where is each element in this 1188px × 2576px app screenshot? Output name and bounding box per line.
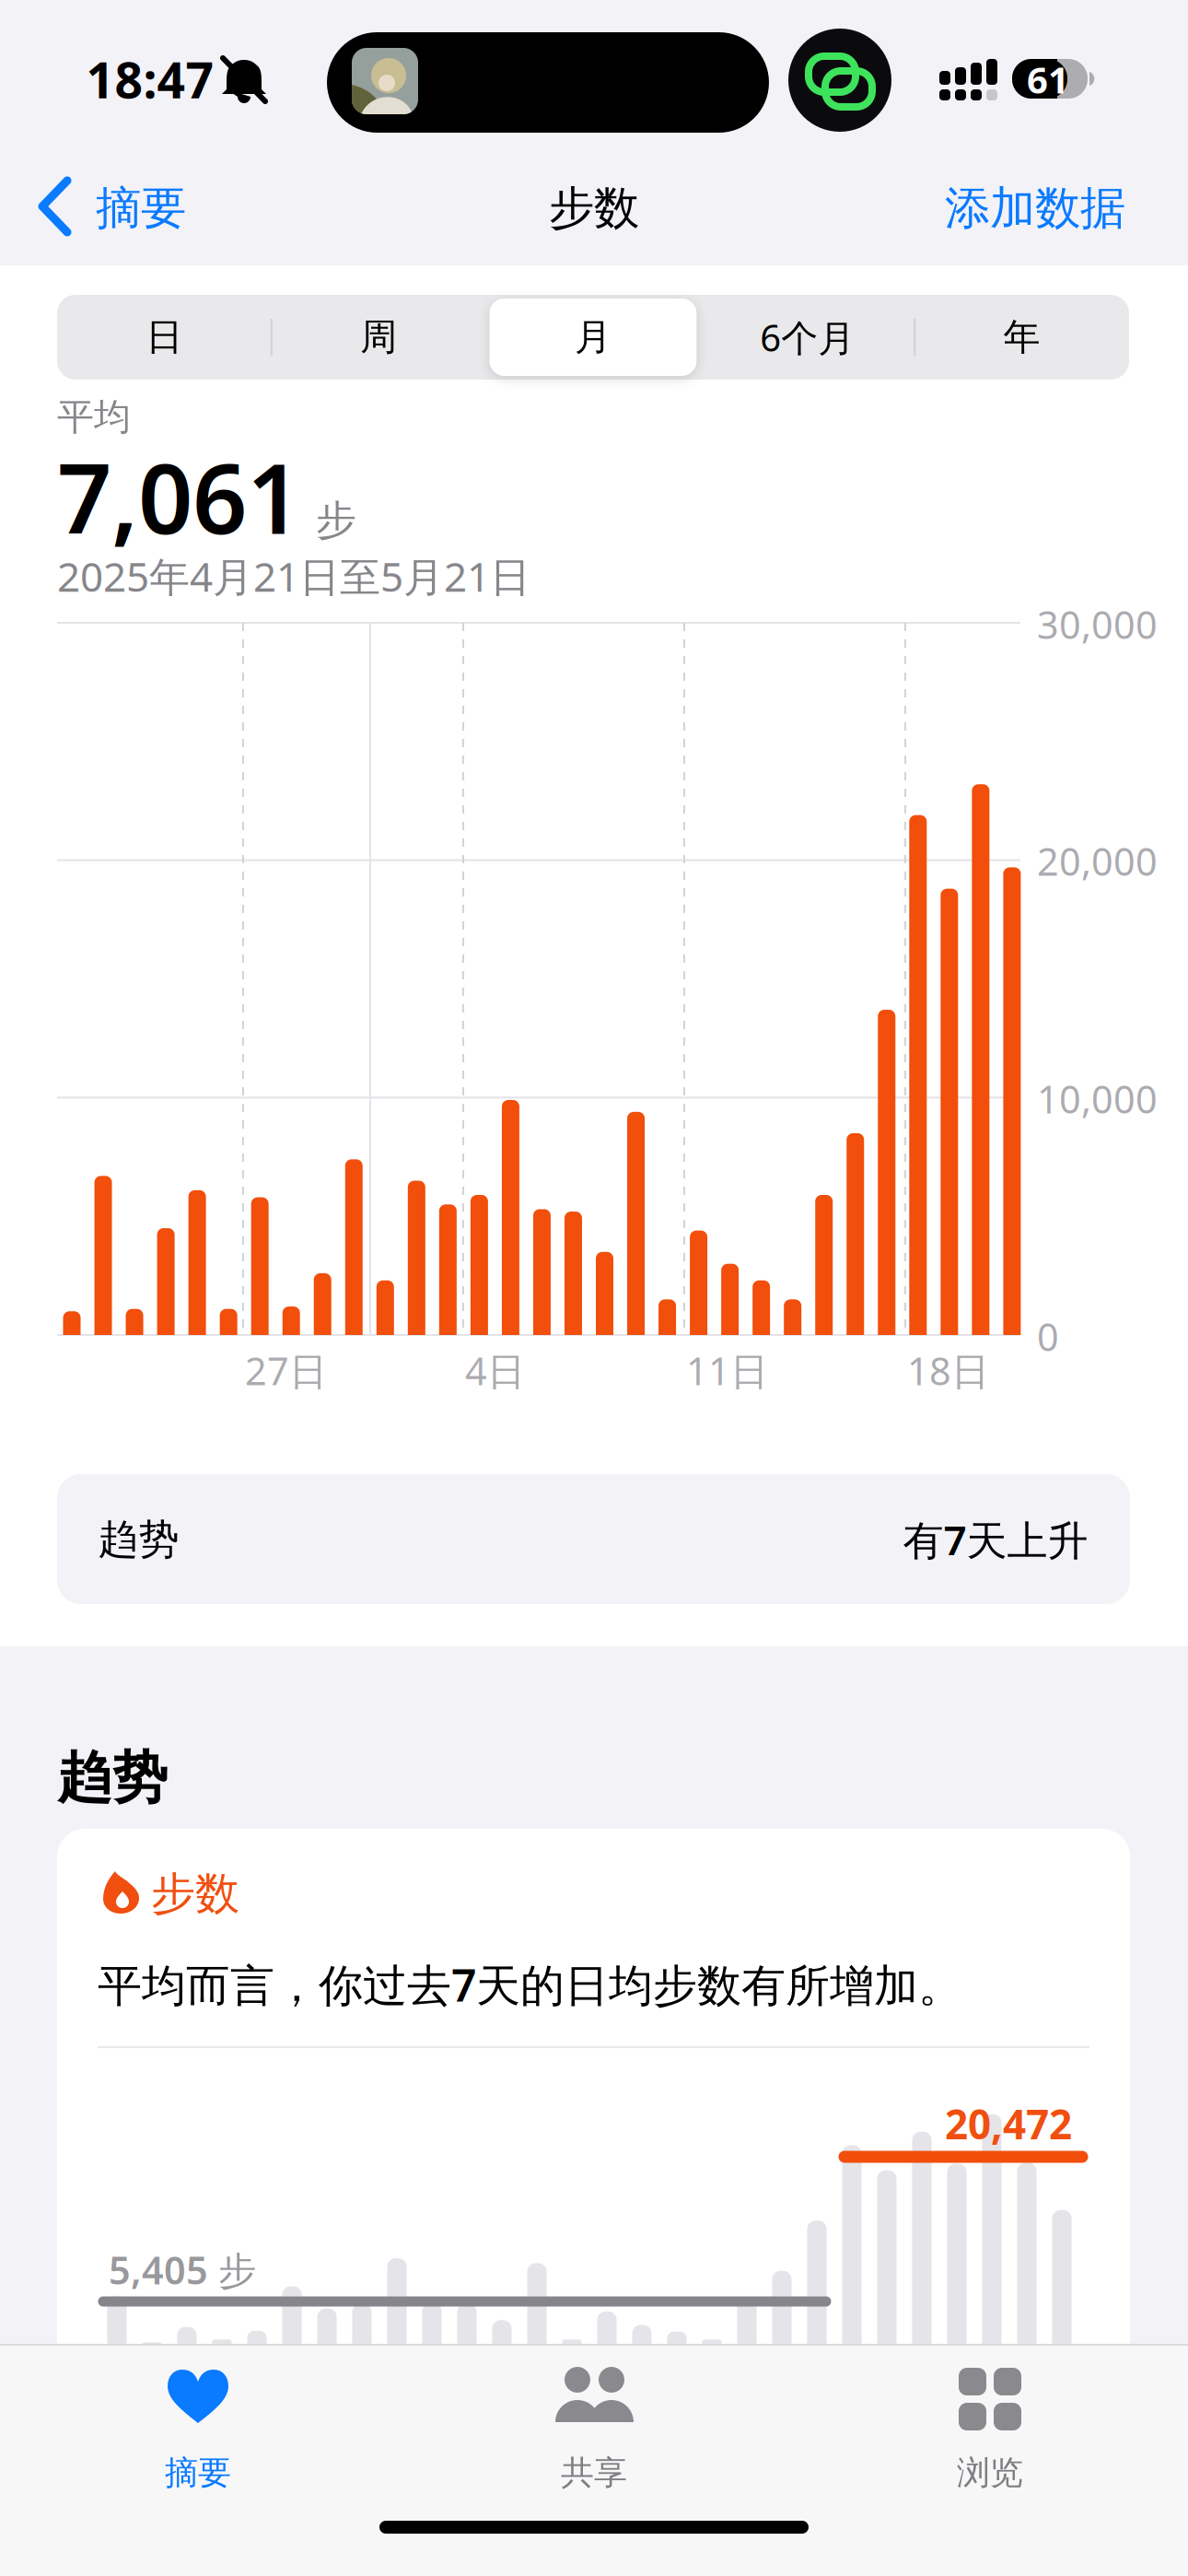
staticText: 61 [1027, 55, 1069, 104]
staticText: 日 [146, 315, 183, 360]
staticText: 步 [316, 495, 356, 545]
staticText: 4日 [465, 1345, 525, 1396]
staticText: 平均而言，你过去7天的日均步数有所增加。 [98, 1955, 962, 2014]
staticText: 18:47 [86, 47, 214, 112]
staticText: 步数 [151, 1867, 239, 1921]
staticText: 浏览 [957, 2452, 1023, 2493]
staticText: 添加数据 [945, 180, 1125, 236]
staticText: 平均 [57, 394, 131, 440]
staticText: 有7天上升 [903, 1513, 1088, 1566]
staticText: 5,405 步 [109, 2244, 256, 2295]
staticText: 摘要 [96, 180, 186, 236]
staticText: 月 [575, 315, 611, 360]
staticText: 10,000 [1037, 1073, 1158, 1124]
staticText: 20,472 [945, 2097, 1072, 2151]
staticText: 2025年4月21日至5月21日 [57, 549, 530, 603]
staticText: 趋势 [57, 1744, 168, 1812]
staticText: 步数 [549, 180, 639, 236]
staticText: 周 [360, 315, 397, 360]
staticText: 30,000 [1037, 599, 1158, 649]
staticText: 7,061 [57, 433, 301, 560]
staticText: 摘要 [165, 2452, 231, 2493]
staticText: 11日 [686, 1345, 768, 1396]
button[interactable]: 共享 [0, 0, 1188, 2576]
staticText: 共享 [561, 2452, 627, 2493]
staticText: 27日 [245, 1345, 327, 1396]
button[interactable]: 摘要 [0, 0, 1188, 2576]
staticText: 6个月 [760, 313, 855, 362]
staticText: 年 [1003, 315, 1040, 360]
staticText: 18日 [907, 1345, 989, 1396]
staticText: 20,000 [1037, 836, 1158, 886]
button[interactable]: 浏览 [0, 0, 1188, 2576]
staticText: 0 [1037, 1311, 1059, 1362]
staticText: 趋势 [98, 1515, 179, 1564]
